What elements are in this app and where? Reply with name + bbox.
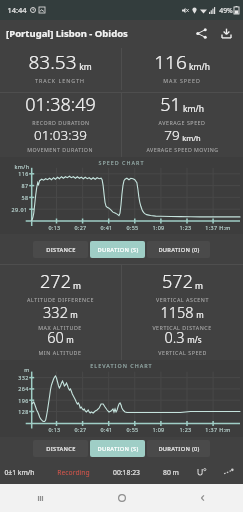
button[interactable]: DISTANCE: [33, 440, 88, 457]
staticText: 0:55: [126, 426, 139, 433]
staticText: 0:13: [48, 224, 61, 231]
button[interactable]: 272: [0, 269, 120, 303]
staticText: MAX ALTITUDE: [38, 324, 82, 331]
button[interactable]: 0.3: [122, 327, 242, 356]
staticText: m/s: [187, 334, 202, 345]
staticText: 332: [18, 374, 29, 381]
staticText: 87: [21, 182, 29, 189]
staticText: DURATION (0): [158, 246, 200, 254]
staticText: 196: [18, 397, 29, 404]
staticText: AVERAGE SPEED: [158, 119, 206, 126]
staticText: DURATION (0): [158, 445, 200, 453]
staticText: 272: [40, 269, 71, 294]
staticText: 51: [160, 92, 181, 117]
staticText: 0:41: [100, 224, 113, 231]
button[interactable]: 01:38:49: [0, 92, 120, 126]
button[interactable]: 51: [122, 92, 242, 126]
button[interactable]: 572: [122, 269, 242, 303]
staticText: 79: [164, 126, 180, 144]
button[interactable]: DURATION (S): [90, 440, 145, 457]
staticText: 1:09: [152, 224, 165, 231]
staticText: VERTICAL DISTANCE: [152, 324, 212, 331]
staticText: 0±1 km/h: [4, 468, 35, 477]
staticText: DISTANCE: [46, 445, 76, 453]
button[interactable]: Home: [81, 484, 162, 512]
staticText: 0.3: [164, 327, 185, 347]
staticText: DURATION (S): [97, 246, 139, 254]
staticText: km/h: [183, 103, 204, 115]
staticText: m: [195, 280, 203, 292]
staticText: 572: [162, 269, 193, 294]
staticText: 58: [21, 194, 29, 201]
staticText: 0:41: [100, 426, 113, 433]
button[interactable]: 79: [122, 126, 242, 153]
button[interactable]: Share: [191, 23, 211, 43]
staticText: ALTITUDE DIFFERENCE: [27, 296, 94, 303]
staticText: DISTANCE: [46, 246, 76, 254]
staticText: m: [66, 334, 74, 345]
staticText: 00:18:23: [113, 468, 140, 477]
staticText: m: [73, 280, 81, 292]
staticText: 83.53: [28, 49, 77, 75]
staticText: 29.01: [11, 206, 28, 213]
button[interactable]: 83.53: [0, 49, 120, 84]
staticText: 60: [47, 327, 64, 347]
button[interactable]: DURATION (S): [90, 241, 145, 258]
button[interactable]: 01:03:39: [0, 126, 120, 153]
button[interactable]: DISTANCE: [33, 241, 88, 258]
staticText: 14:44: [7, 5, 27, 15]
staticText: 128: [18, 408, 29, 415]
staticText: km/h: [189, 61, 210, 73]
button[interactable]: Back: [162, 484, 243, 512]
staticText: DURATION (S): [97, 445, 139, 453]
staticText: 1:09: [152, 426, 165, 433]
staticText: 264: [18, 385, 29, 392]
staticText: 0:55: [126, 224, 139, 231]
staticText: 0:27: [74, 426, 87, 433]
staticText: 1:37 H:m: [205, 224, 231, 231]
staticText: m: [70, 309, 78, 320]
staticText: 0:27: [74, 224, 87, 231]
button[interactable]: 332: [0, 302, 120, 331]
button[interactable]: 116: [122, 49, 242, 84]
staticText: VERTICAL SPEED: [158, 349, 207, 356]
staticText: VERTICAL ASCENT: [156, 296, 209, 303]
staticText: MIN ALTITUDE: [38, 349, 82, 356]
staticText: 116: [18, 170, 29, 177]
staticText: ELEVATION CHART: [90, 362, 153, 369]
staticText: RECORD DURATION: [32, 119, 90, 126]
staticText: 332: [43, 302, 68, 322]
button[interactable]: 60: [0, 327, 120, 356]
staticText: AVERAGE SPEED MOVING: [146, 146, 219, 153]
staticText: km/h: [182, 133, 201, 143]
staticText: 116: [154, 49, 187, 75]
staticText: 1:37 H:m: [205, 426, 231, 433]
button[interactable]: Download: [216, 23, 236, 43]
staticText: SPEED CHART: [98, 159, 145, 166]
staticText: 49%: [219, 6, 233, 15]
staticText: 01:03:39: [34, 126, 87, 144]
staticText: 1:23: [179, 426, 192, 433]
staticText: [Portugal] Lisbon - Obidos: [6, 27, 128, 40]
staticText: Recording: [57, 468, 90, 477]
button[interactable]: Recents: [0, 484, 81, 512]
staticText: 0:13: [48, 426, 61, 433]
staticText: m: [24, 366, 30, 373]
staticText: km: [79, 61, 92, 73]
staticText: MOVEMENT DURATION: [27, 146, 93, 153]
staticText: 1158: [160, 302, 194, 322]
staticText: km/h: [14, 163, 30, 170]
staticText: TRACK LENGTH: [35, 77, 85, 84]
staticText: 80 m: [163, 468, 179, 477]
staticText: MAX SPEED: [163, 77, 201, 84]
staticText: 01:38:49: [25, 92, 96, 117]
staticText: 1:23: [179, 224, 192, 231]
button[interactable]: 1158: [122, 302, 242, 331]
staticText: m: [196, 309, 204, 320]
button[interactable]: DURATION (0): [147, 241, 210, 258]
button[interactable]: DURATION (0): [147, 440, 210, 457]
